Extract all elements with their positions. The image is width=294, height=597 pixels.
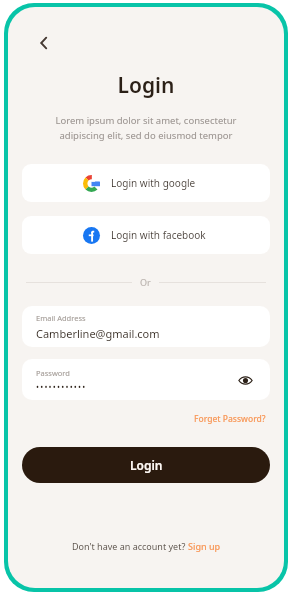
staticText: Or	[140, 276, 151, 288]
staticText: Forget Password?	[194, 413, 266, 425]
button[interactable]: Back	[30, 29, 58, 57]
button[interactable]: Email Address	[22, 306, 270, 347]
button[interactable]: Login with google	[22, 164, 270, 202]
staticText: Login with facebook	[111, 228, 206, 242]
button[interactable]: Forget Password?	[192, 411, 268, 427]
staticText: Password	[36, 368, 70, 378]
button[interactable]: Login	[22, 447, 270, 483]
staticText: Sign up	[188, 540, 221, 552]
button[interactable]: Login with facebook	[22, 216, 270, 254]
staticText: Lorem ipsum dolor sit amet, consectetur …	[34, 114, 258, 142]
staticText: Email Address	[36, 313, 86, 323]
button[interactable]: Password	[22, 359, 270, 400]
staticText: Camberline@gmail.com	[36, 326, 160, 341]
staticText: Don't have an account yet?	[72, 540, 188, 552]
button[interactable]: Don't have an account yet?	[72, 540, 221, 552]
staticText: ••••••••••••	[36, 381, 87, 392]
staticText: Login with google	[111, 176, 196, 190]
staticText: Login	[8, 71, 284, 100]
button[interactable]: Show password	[234, 369, 256, 391]
staticText: Login	[130, 457, 163, 473]
